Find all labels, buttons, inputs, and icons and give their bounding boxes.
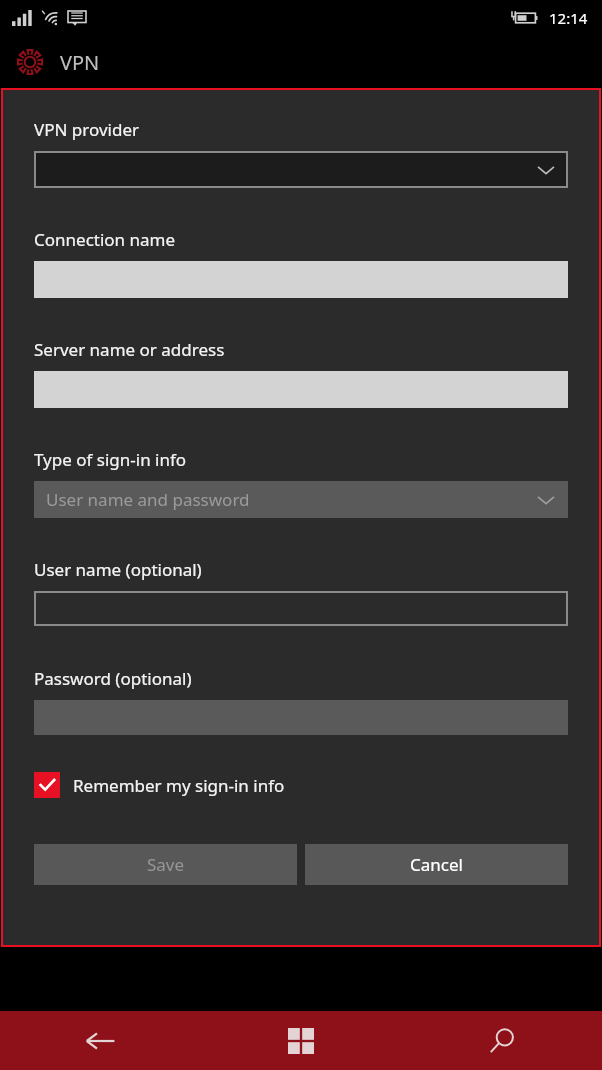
staticText: Password (optional) — [34, 667, 192, 690]
staticText: Type of sign-in info — [34, 448, 187, 471]
staticText: User name and password — [46, 488, 250, 511]
button[interactable]: Save — [34, 844, 297, 885]
staticText: 12:14 — [549, 8, 588, 28]
staticText: VPN provider — [34, 118, 139, 141]
button[interactable]: Remember my sign-in info — [34, 772, 285, 798]
staticText: Server name or address — [34, 338, 225, 361]
button[interactable]: Start — [200, 1011, 401, 1070]
staticText: Save — [147, 853, 185, 876]
button[interactable]: Cancel — [305, 844, 568, 885]
staticText: User name (optional) — [34, 558, 202, 581]
staticText: Cancel — [410, 853, 463, 876]
staticText: VPN — [60, 49, 100, 76]
button[interactable]: User name and password — [34, 481, 568, 518]
button[interactable]: Search — [401, 1011, 602, 1070]
button[interactable]: Back — [0, 1011, 200, 1070]
button[interactable] — [34, 151, 568, 188]
staticText: Connection name — [34, 228, 176, 251]
staticText: Remember my sign-in info — [73, 774, 285, 797]
button[interactable] — [34, 591, 568, 626]
